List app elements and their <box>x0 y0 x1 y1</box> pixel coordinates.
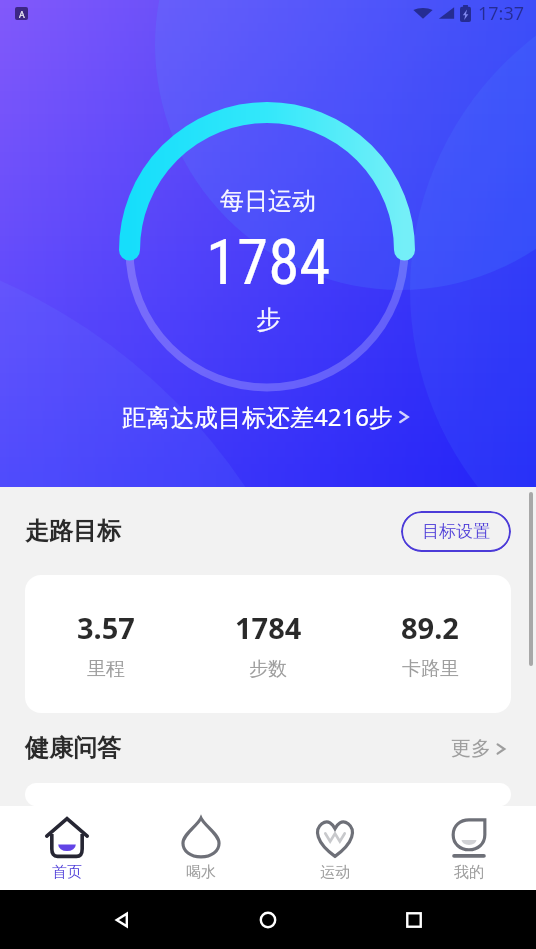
staticText: 1784 <box>235 608 302 647</box>
other: Home <box>256 908 280 932</box>
staticText: 步 <box>256 304 281 335</box>
staticText: 首页 <box>52 863 82 882</box>
staticText: 走路目标 <box>25 516 121 546</box>
staticText: 卡路里 <box>402 657 459 681</box>
staticText: 里程 <box>87 657 125 681</box>
other: Back <box>110 908 134 932</box>
staticText: 更多 <box>451 736 491 761</box>
staticText: 健康问答 <box>25 733 121 763</box>
button[interactable]: 我的 <box>402 806 536 890</box>
staticText: 喝水 <box>186 863 216 882</box>
button[interactable]: 喝水 <box>134 806 268 890</box>
other: Recents <box>402 908 426 932</box>
staticText: 1784 <box>206 226 331 300</box>
button[interactable]: 目标设置 <box>401 511 511 552</box>
button[interactable]: Recents <box>390 896 438 944</box>
staticText: 89.2 <box>401 608 459 647</box>
staticText: A <box>19 8 25 20</box>
staticText: 我的 <box>454 863 484 882</box>
staticText: 17:37 <box>478 1 525 26</box>
staticText: 3.57 <box>77 608 135 647</box>
button[interactable]: 首页 <box>0 806 134 890</box>
staticText: 每日运动 <box>220 186 316 216</box>
staticText: 目标设置 <box>422 521 490 542</box>
staticText: 距离达成目标还差4216步 <box>122 400 393 433</box>
button[interactable]: 距离达成目标还差4216步 <box>122 400 415 433</box>
staticText: 步数 <box>249 657 287 681</box>
button[interactable]: Back <box>98 896 146 944</box>
button[interactable]: 3.57 <box>25 575 511 713</box>
staticText: 运动 <box>320 863 350 882</box>
button[interactable]: Home <box>244 896 292 944</box>
button[interactable]: 运动 <box>268 806 402 890</box>
button[interactable]: 更多 <box>451 736 511 761</box>
